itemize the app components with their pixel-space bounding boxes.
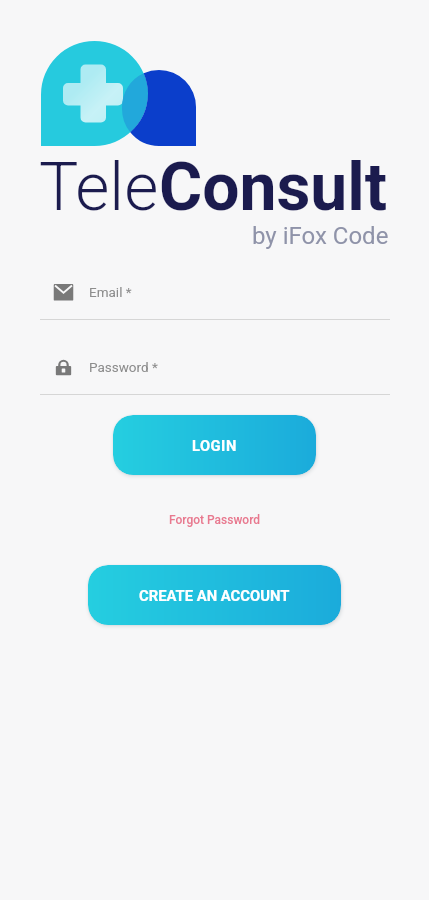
staticText: by iFox Code: [252, 222, 389, 250]
other: Password: [53, 357, 74, 378]
staticText: Consult: [159, 149, 388, 226]
staticText: Email *: [89, 284, 132, 300]
button[interactable]: LOGIN: [113, 415, 316, 475]
staticText: Tele: [39, 149, 159, 226]
button[interactable]: CREATE AN ACCOUNT: [88, 565, 341, 625]
staticText: Password *: [89, 359, 158, 375]
staticText: CREATE AN ACCOUNT: [139, 587, 290, 604]
button[interactable]: Password: [40, 348, 390, 386]
staticText: LOGIN: [192, 437, 237, 454]
other: Email: [53, 282, 74, 303]
button[interactable]: Forgot Password: [169, 513, 261, 527]
button[interactable]: Email: [40, 273, 390, 311]
